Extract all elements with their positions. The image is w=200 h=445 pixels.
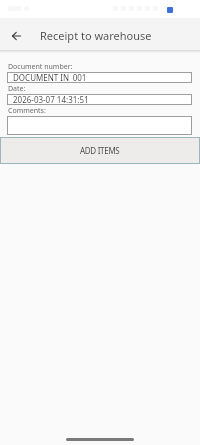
staticText: Document number: (8, 62, 73, 72)
button[interactable]: 2026-03-07 14:31:51 (7, 94, 192, 105)
staticText: DOCUMENT IN_001 (13, 72, 87, 83)
staticText: ADD ITEMS (80, 145, 120, 156)
button[interactable]: DOCUMENT IN_001 (7, 72, 192, 83)
staticText: Comments: (8, 106, 46, 116)
staticText: Date: (8, 84, 26, 94)
button[interactable]: Back (0, 19, 32, 51)
button[interactable] (7, 116, 192, 135)
button[interactable]: ADD ITEMS (0, 137, 200, 164)
staticText: 2026-03-07 14:31:51 (13, 94, 89, 105)
staticText: Receipt to warehouse (40, 28, 152, 43)
